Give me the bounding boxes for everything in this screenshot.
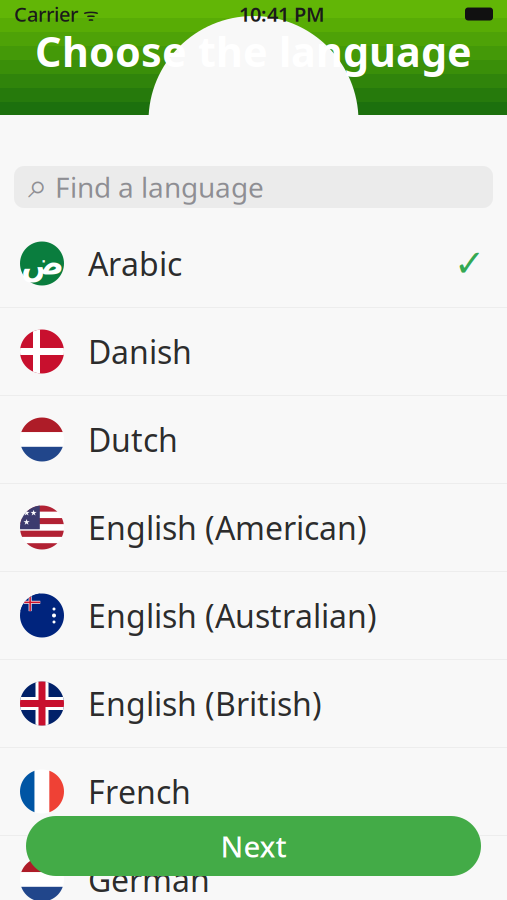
staticText: Find a language xyxy=(55,168,264,206)
button[interactable]: French xyxy=(0,748,507,836)
staticText: English (American) xyxy=(88,506,367,549)
staticText: ض xyxy=(20,245,63,282)
button[interactable]: English (Australian) xyxy=(0,572,507,660)
staticText: Arabic xyxy=(88,242,182,285)
staticText: English (British) xyxy=(88,682,322,725)
staticText: Next xyxy=(220,826,286,865)
staticText: ✓ xyxy=(454,242,485,285)
staticText: English (Australian) xyxy=(88,594,377,637)
staticText: Dutch xyxy=(88,418,178,461)
staticText: ⌕ xyxy=(28,170,47,204)
staticText: Choose the language xyxy=(35,24,472,78)
staticText: French xyxy=(88,770,191,813)
button[interactable]: English (British) xyxy=(0,660,507,748)
button[interactable]: ض xyxy=(0,220,507,308)
button[interactable]: Dutch xyxy=(0,396,507,484)
staticText: Danish xyxy=(88,330,192,373)
staticText: German xyxy=(88,858,210,900)
button[interactable]: ⌕ xyxy=(14,166,493,208)
staticText: 10:41 PM xyxy=(239,1,325,27)
staticText: ★★★ xyxy=(23,508,37,526)
button[interactable]: Next xyxy=(26,816,481,876)
button[interactable]: ★★★ xyxy=(0,484,507,572)
button[interactable]: German xyxy=(0,836,507,900)
button[interactable]: Danish xyxy=(0,308,507,396)
staticText: ᯤ xyxy=(78,2,99,25)
staticText: Carrier xyxy=(14,1,78,27)
